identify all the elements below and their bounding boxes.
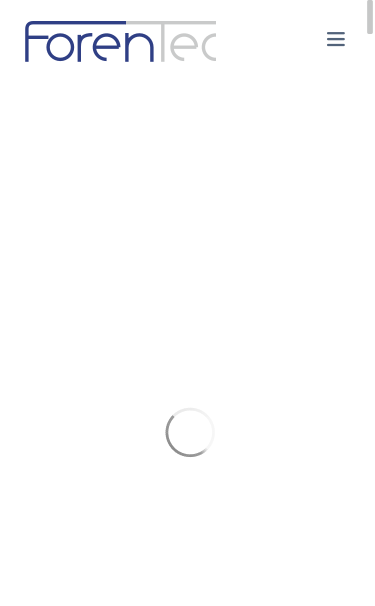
button[interactable]: Menu bbox=[314, 17, 358, 61]
